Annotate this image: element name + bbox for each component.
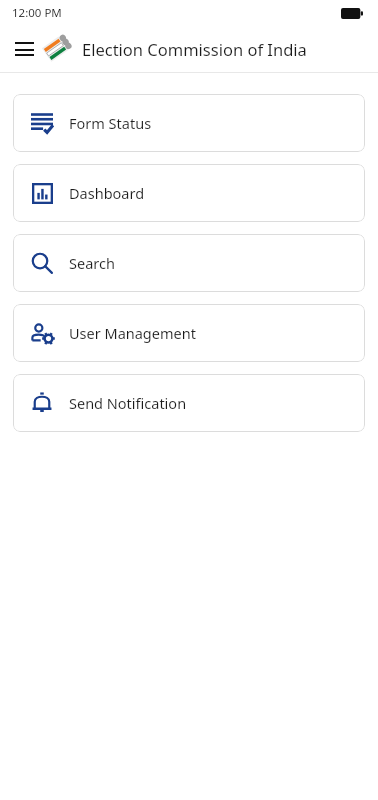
button[interactable]: Search <box>13 234 365 292</box>
button[interactable]: Open navigation menu <box>8 33 40 65</box>
staticText: 12:00 PM <box>12 5 62 21</box>
button[interactable]: Send Notification <box>13 374 365 432</box>
button[interactable]: Form Status <box>13 94 365 152</box>
staticText: Election Commission of India <box>82 38 307 60</box>
button[interactable]: Dashboard <box>13 164 365 222</box>
staticText: Send Notification <box>69 393 187 413</box>
button[interactable]: User Management <box>13 304 365 362</box>
staticText: User Management <box>69 323 196 343</box>
staticText: Dashboard <box>69 183 145 203</box>
staticText: Form Status <box>69 113 152 133</box>
staticText: Search <box>69 253 115 273</box>
